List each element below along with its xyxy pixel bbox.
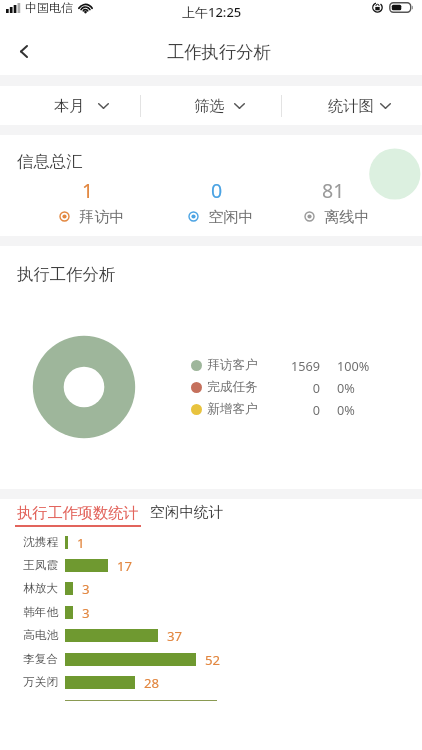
button[interactable]: 李复合 <box>0 651 422 668</box>
staticText: 拜访中 <box>79 207 125 226</box>
staticText: 3 <box>82 604 90 621</box>
button[interactable]: 万关闭 <box>0 674 422 691</box>
staticText: 28 <box>144 674 160 691</box>
staticText: 执行工作分析 <box>17 264 116 285</box>
staticText: 1569 <box>278 357 320 374</box>
staticText: 0 <box>278 401 320 418</box>
staticText: 完成任务 <box>207 379 258 395</box>
staticText: 上午12:25 <box>182 3 242 21</box>
staticText: 执行工作项数统计 <box>17 503 139 522</box>
button[interactable]: 高电池 <box>0 627 422 644</box>
staticText: 万关闭 <box>0 675 58 690</box>
staticText: 空闲中统计 <box>150 503 224 522</box>
button[interactable]: Back <box>2 29 46 73</box>
staticText: 81 <box>322 177 345 204</box>
staticText: 37 <box>167 627 183 644</box>
staticText: 17 <box>117 557 133 574</box>
button[interactable]: 离线中 <box>304 203 370 229</box>
button[interactable]: 空闲中 <box>188 203 254 229</box>
staticText: 韩年他 <box>0 605 58 620</box>
staticText: 工作执行分析 <box>167 41 271 63</box>
staticText: 0 <box>278 379 320 396</box>
staticText: 空闲中 <box>208 207 254 226</box>
staticText: 筛选 <box>194 96 225 115</box>
staticText: 林放大 <box>0 581 58 596</box>
staticText: 沈携程 <box>0 535 58 550</box>
staticText: 100% <box>337 357 370 374</box>
staticText: 0 <box>211 177 223 204</box>
button[interactable]: 王凤霞 <box>0 557 422 574</box>
staticText: 1 <box>82 177 94 204</box>
staticText: 李复合 <box>0 652 58 667</box>
button[interactable]: 执行工作项数统计 <box>15 503 141 527</box>
button[interactable]: 林放大 <box>0 580 422 597</box>
button[interactable]: 空闲中统计 <box>150 503 224 522</box>
button[interactable]: 拜访客户 <box>191 354 370 376</box>
button[interactable]: 拜访中 <box>59 203 125 229</box>
staticText: 高电池 <box>0 628 58 643</box>
button[interactable]: 筛选 <box>141 86 281 125</box>
button[interactable]: 统计图 <box>282 86 422 125</box>
button[interactable]: 新增客户 <box>191 398 355 420</box>
staticText: 离线中 <box>324 207 370 226</box>
staticText: 0% <box>337 401 355 418</box>
staticText: 新增客户 <box>207 401 258 417</box>
button[interactable]: 完成任务 <box>191 376 355 398</box>
staticText: 中国电信 <box>25 0 73 15</box>
button[interactable]: 韩年他 <box>0 604 422 621</box>
staticText: 拜访客户 <box>207 357 258 373</box>
staticText: 统计图 <box>328 96 374 115</box>
button[interactable]: 本月 <box>0 86 140 125</box>
staticText: 52 <box>205 651 221 668</box>
staticText: 信息总汇 <box>17 151 83 172</box>
staticText: 1 <box>77 534 85 551</box>
staticText: 3 <box>82 580 90 597</box>
staticText: 0% <box>337 379 355 396</box>
staticText: 本月 <box>54 96 85 115</box>
staticText: 王凤霞 <box>0 558 58 573</box>
button[interactable]: 沈携程 <box>0 534 422 551</box>
